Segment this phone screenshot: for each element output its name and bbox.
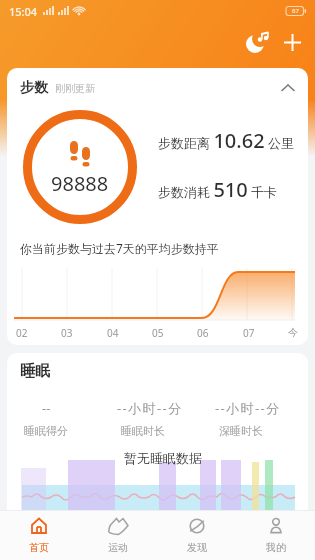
staticText: 步数消耗 510 千卡 [158,176,278,203]
staticText: 首页 [29,541,49,554]
staticText: 67 [292,7,299,15]
staticText: 睡眠 [20,362,50,381]
button[interactable]: 首页 [0,510,78,560]
staticText: 运动 [108,541,128,554]
staticText: 刚刚更新 [55,82,95,95]
staticText: 03 [61,326,73,340]
button[interactable]: 步数 [7,68,308,345]
staticText: 深睡时长 [219,424,263,438]
button[interactable]: 运动 [78,510,157,560]
button[interactable] [278,28,306,56]
staticText: 98888 [51,170,109,197]
button[interactable]: 睡眠 [7,353,308,560]
staticText: 步数 [20,79,48,97]
staticText: 今 [288,326,298,339]
staticText: 07 [243,326,255,340]
staticText: 我的 [266,541,286,554]
staticText: 04 [107,326,119,340]
staticText: 05 [152,326,164,340]
staticText: 睡眠得分 [24,424,68,438]
staticText: 02 [16,326,28,340]
staticText: 06 [197,326,209,340]
staticText: 睡眠时长 [121,424,165,438]
button[interactable]: 我的 [236,510,315,560]
button[interactable]: 发现 [157,510,236,560]
staticText: 你当前步数与过去7天的平均步数持平 [20,240,219,256]
staticText: 步数距离 10.62 公里 [158,127,294,154]
staticText: -- [42,399,51,417]
staticText: --小时--分 [215,399,281,417]
staticText: 暂无睡眠数据 [124,450,202,466]
staticText: --小时--分 [117,399,183,417]
staticText: 发现 [187,541,207,554]
button[interactable] [244,29,270,55]
staticText: 15:04 [9,4,38,19]
